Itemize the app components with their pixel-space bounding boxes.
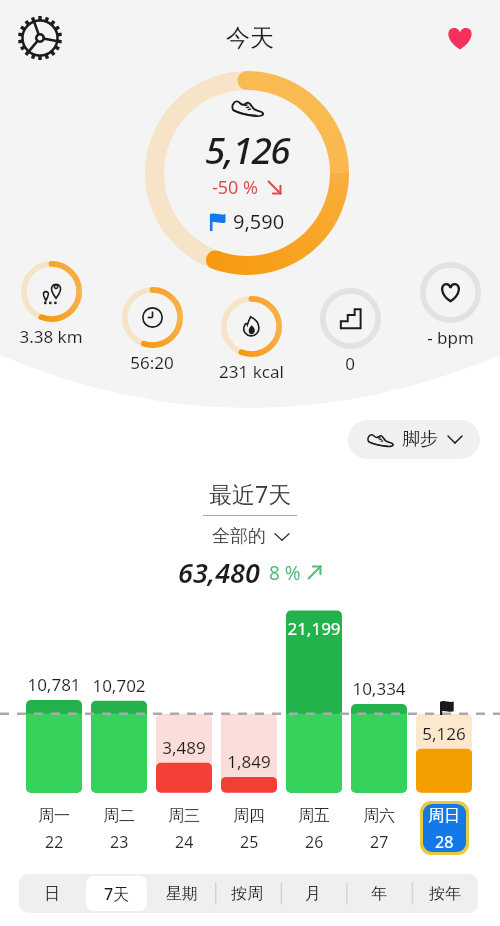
staticText: 今天 (226, 23, 274, 53)
staticText: 56:20 (130, 351, 174, 374)
button[interactable]: 10,781 (26, 600, 82, 800)
button[interactable]: 按周 (214, 874, 280, 913)
button[interactable]: 21,199 (286, 600, 342, 800)
staticText: 按周 (231, 884, 263, 904)
button[interactable]: 月 (280, 874, 346, 913)
staticText: 1,849 (221, 750, 277, 773)
staticText: 25 (240, 831, 259, 853)
button[interactable]: 周一 (26, 801, 82, 857)
button[interactable]: 5,126 (416, 600, 472, 800)
button[interactable]: 年 (346, 874, 412, 913)
button[interactable]: 0 (300, 288, 400, 375)
staticText: 28 (435, 831, 454, 853)
staticText: 231 kcal (219, 360, 284, 383)
staticText: 10,781 (26, 673, 82, 696)
staticText: -50 % (212, 175, 259, 200)
button[interactable]: 按年 (412, 874, 478, 913)
staticText: 周三 (168, 806, 200, 826)
button[interactable]: Settings (16, 14, 64, 62)
button[interactable]: 3,489 (156, 600, 212, 800)
staticText: - bpm (427, 326, 474, 349)
staticText: 26 (305, 831, 324, 853)
staticText: 27 (370, 831, 389, 853)
staticText: 3.38 km (19, 325, 83, 348)
staticText: 9,590 (233, 208, 285, 235)
button[interactable]: 10,702 (91, 600, 147, 800)
button[interactable]: - bpm (400, 262, 500, 349)
button[interactable]: 3.38 km (1, 261, 101, 348)
staticText: 23 (110, 831, 129, 853)
staticText: 8 % (269, 560, 301, 586)
button[interactable]: 脚步 (348, 420, 480, 459)
button[interactable]: 56:20 (102, 287, 202, 374)
staticText: 脚步 (402, 428, 438, 451)
staticText: 按年 (429, 884, 461, 904)
staticText: 10,334 (351, 677, 407, 700)
staticText: 周四 (233, 806, 265, 826)
staticText: 周一 (38, 806, 70, 826)
staticText: 3,489 (156, 736, 212, 759)
staticText: 22 (45, 831, 64, 853)
staticText: 周日 (428, 806, 460, 826)
button[interactable]: 7天 (84, 874, 149, 913)
staticText: 年 (371, 884, 387, 904)
staticText: 5,126 (205, 124, 290, 174)
staticText: 7天 (104, 883, 130, 905)
staticText: 周五 (298, 806, 330, 826)
button[interactable]: 全部的 (212, 525, 289, 548)
staticText: 10,702 (91, 674, 147, 697)
button[interactable]: 星期 (149, 874, 214, 913)
button[interactable]: 日 (19, 874, 84, 913)
staticText: 0 (345, 352, 355, 375)
button[interactable]: 1,849 (221, 600, 277, 800)
staticText: 日 (44, 884, 60, 904)
staticText: 月 (305, 884, 321, 904)
button[interactable]: 10,334 (351, 600, 407, 800)
button[interactable]: 周六 (351, 801, 407, 857)
staticText: 24 (175, 831, 194, 853)
staticText: 全部的 (212, 525, 266, 548)
button[interactable]: 周二 (91, 801, 147, 857)
button[interactable]: 周四 (221, 801, 277, 857)
staticText: 21,199 (286, 617, 342, 640)
staticText: 最近7天 (209, 478, 292, 509)
button[interactable]: 周三 (156, 801, 212, 857)
staticText: 63,480 (178, 554, 260, 591)
staticText: 星期 (166, 884, 198, 904)
button[interactable]: 周日 (416, 801, 472, 857)
staticText: 周六 (363, 806, 395, 826)
staticText: 5,126 (416, 722, 472, 745)
button[interactable]: 周五 (286, 801, 342, 857)
button[interactable]: Heart rate (436, 14, 484, 62)
staticText: 周二 (103, 806, 135, 826)
button[interactable]: 231 kcal (201, 296, 301, 383)
